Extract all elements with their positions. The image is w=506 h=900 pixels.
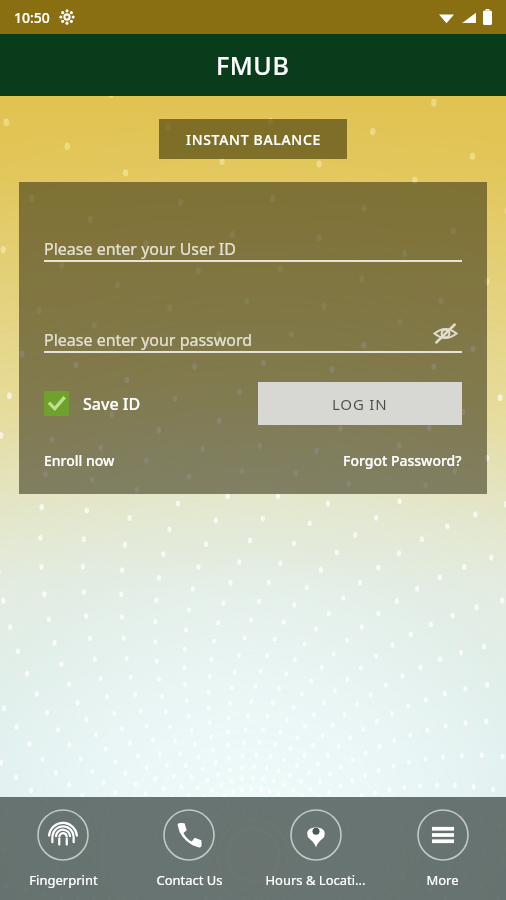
staticText: LOG IN	[332, 394, 388, 414]
staticText: Hours & Locati...	[265, 871, 366, 889]
button[interactable]: INSTANT BALANCE	[159, 119, 347, 159]
staticText: Forgot Password?	[343, 451, 462, 470]
button[interactable]: Please enter your User ID	[44, 224, 462, 260]
button[interactable]: Fingerprint	[0, 797, 126, 900]
button[interactable]: Hours & Locati...	[252, 797, 379, 900]
button[interactable]: Show password	[428, 316, 462, 350]
staticText: More	[426, 871, 459, 889]
button[interactable]: Save ID	[44, 391, 141, 416]
staticText: 10:50	[14, 8, 50, 27]
staticText: Please enter your User ID	[44, 238, 236, 260]
button[interactable]: LOG IN	[258, 382, 462, 425]
staticText: FMUB	[216, 48, 290, 82]
staticText: Fingerprint	[29, 871, 98, 889]
staticText: Contact Us	[156, 871, 223, 889]
button[interactable]: Forgot Password?	[343, 451, 462, 470]
button[interactable]: Contact Us	[126, 797, 252, 900]
button[interactable]: Please enter your password	[44, 315, 462, 351]
staticText: Enroll now	[44, 451, 115, 470]
staticText: Please enter your password	[44, 329, 253, 351]
button[interactable]: Enroll now	[44, 451, 115, 470]
button[interactable]: More	[379, 797, 506, 900]
staticText: INSTANT BALANCE	[186, 130, 321, 149]
staticText: Save ID	[83, 393, 141, 415]
